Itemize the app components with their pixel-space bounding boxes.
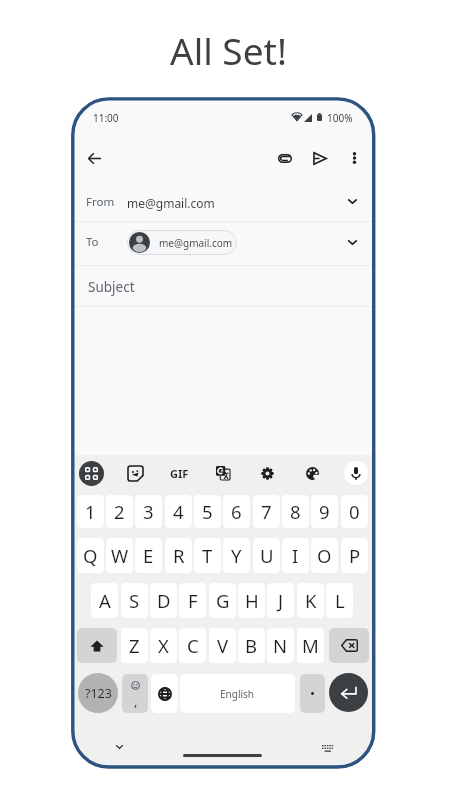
staticText: X (158, 633, 169, 658)
button[interactable]: R (165, 538, 192, 573)
staticText: 8 (290, 499, 301, 524)
button[interactable]: 6 (223, 495, 250, 528)
button[interactable]: N (267, 628, 294, 663)
button[interactable]: English (180, 674, 295, 713)
button[interactable]: D (150, 583, 177, 618)
button[interactable]: Voice input (344, 461, 368, 485)
button[interactable]: T (194, 538, 221, 573)
button[interactable]: Switch keyboard (320, 740, 336, 756)
staticText: All Set! (170, 25, 287, 65)
button[interactable]: ?123 (78, 673, 118, 713)
staticText: L (335, 588, 345, 613)
button[interactable]: Change language (151, 674, 178, 713)
staticText: E (143, 543, 154, 568)
staticText: G (216, 588, 230, 613)
button[interactable]: L (326, 583, 353, 618)
staticText: P (349, 543, 361, 568)
button[interactable]: 0 (341, 495, 368, 528)
button[interactable]: G (209, 583, 236, 618)
staticText: 1 (85, 499, 96, 524)
staticText: English (220, 687, 255, 701)
button[interactable]: E (135, 538, 162, 573)
staticText: , (134, 692, 138, 710)
staticText: 5 (202, 499, 213, 524)
staticText: To (86, 234, 99, 250)
staticText: C (187, 633, 199, 658)
button[interactable]: Settings (254, 460, 280, 486)
staticText: 6 (231, 499, 242, 524)
button[interactable]: 7 (253, 495, 280, 528)
button[interactable]: C (179, 628, 206, 663)
button[interactable]: 8 (282, 495, 309, 528)
staticText: me@gmail.com (159, 236, 233, 250)
button[interactable]: 9 (311, 495, 338, 528)
button[interactable]: Keyboard apps (79, 461, 104, 486)
button[interactable]: J (267, 583, 294, 618)
button[interactable]: U (253, 538, 280, 573)
staticText: J (278, 588, 284, 613)
button[interactable]: Send (306, 144, 334, 172)
staticText: D (157, 588, 171, 613)
button[interactable]: Themes (299, 460, 325, 486)
button[interactable]: 3 (135, 495, 162, 528)
button[interactable]: P (341, 538, 368, 573)
staticText: O (317, 543, 332, 568)
button[interactable]: 1 (77, 495, 104, 528)
button[interactable]: Q (77, 538, 104, 573)
button[interactable]: Shift (77, 628, 117, 663)
button[interactable]: Y (223, 538, 250, 573)
button[interactable]: 4 (165, 495, 192, 528)
staticText: ?123 (85, 685, 112, 702)
staticText: 100% (327, 111, 353, 125)
staticText: 11:00 (93, 111, 119, 125)
button[interactable]: Translate (210, 460, 236, 486)
button[interactable]: Hide keyboard (111, 739, 127, 755)
button[interactable]: M (297, 628, 324, 663)
button[interactable]: 2 (106, 495, 133, 528)
button[interactable]: Backspace (329, 628, 369, 663)
staticText: 0 (349, 499, 360, 524)
staticText: 4 (173, 499, 184, 524)
button[interactable]: Back (80, 144, 108, 172)
button[interactable]: me@gmail.com (127, 230, 237, 255)
button[interactable]: V (209, 628, 236, 663)
button[interactable]: More options (342, 146, 366, 170)
staticText: 7 (261, 499, 272, 524)
staticText: M (302, 633, 319, 658)
staticText: V (217, 633, 229, 658)
staticText: Z (129, 633, 140, 658)
staticText: Subject (88, 278, 135, 296)
staticText: U (260, 543, 274, 568)
button[interactable]: Attach file (271, 144, 299, 172)
staticText: me@gmail.com (127, 195, 215, 211)
button[interactable]: Stickers (122, 460, 148, 486)
staticText: H (245, 588, 259, 613)
button[interactable]: O (311, 538, 338, 573)
button[interactable]: Enter (329, 673, 368, 712)
staticText: 2 (114, 499, 125, 524)
staticText: Q (83, 543, 98, 568)
staticText: GIF (170, 466, 189, 481)
button[interactable]: K (297, 583, 324, 618)
button[interactable]: I (282, 538, 309, 573)
button[interactable]: Emoji and comma (122, 674, 148, 713)
staticText: S (129, 588, 140, 613)
button[interactable]: Period (300, 674, 325, 713)
button[interactable]: S (121, 583, 148, 618)
button[interactable]: X (150, 628, 177, 663)
staticText: Y (231, 543, 242, 568)
button[interactable]: B (238, 628, 265, 663)
button[interactable]: 5 (194, 495, 221, 528)
button[interactable]: A (91, 583, 118, 618)
button[interactable]: W (106, 538, 133, 573)
staticText: F (188, 588, 198, 613)
staticText: T (202, 543, 213, 568)
button[interactable]: F (179, 583, 206, 618)
button[interactable]: Z (121, 628, 148, 663)
button[interactable]: H (238, 583, 265, 618)
button[interactable]: GIF (166, 460, 192, 486)
staticText: 3 (143, 499, 154, 524)
staticText: W (111, 543, 129, 568)
staticText: N (273, 633, 288, 658)
staticText: 9 (319, 499, 330, 524)
